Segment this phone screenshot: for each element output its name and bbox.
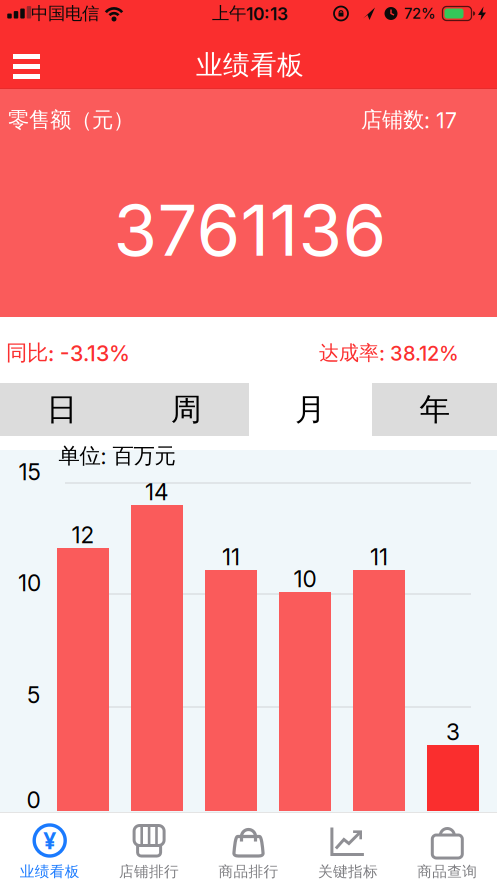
button[interactable]: 日	[0, 383, 124, 436]
staticText: 商品查询	[417, 862, 477, 880]
button[interactable]: ¥	[0, 812, 99, 882]
staticText: 12	[71, 521, 94, 549]
button[interactable]	[9, 50, 44, 83]
staticText: 零售额（元）	[8, 107, 134, 133]
staticText: 10	[293, 565, 316, 593]
staticText: 10	[18, 569, 41, 597]
staticText: 月	[295, 391, 326, 428]
staticText: 3	[446, 718, 460, 746]
staticText: 0	[26, 786, 40, 814]
staticText: 商品排行	[218, 862, 278, 880]
staticText: 年	[419, 391, 450, 428]
button[interactable]: 店铺排行	[100, 812, 199, 882]
staticText: 关键指标	[318, 862, 378, 880]
staticText: 店铺数: 17	[361, 107, 457, 133]
staticText: 店铺排行	[119, 862, 179, 880]
staticText: 同比: -3.13%	[6, 340, 130, 366]
staticText: 周	[171, 391, 202, 428]
staticText: 11	[370, 543, 388, 571]
button[interactable]: 商品查询	[398, 812, 497, 882]
button[interactable]: 月	[249, 383, 373, 436]
staticText: 业绩看板	[196, 49, 304, 81]
button[interactable]: 商品排行	[199, 812, 298, 882]
staticText: 业绩看板	[20, 862, 80, 880]
staticText: 上午10:13	[212, 3, 288, 24]
staticText: 日	[47, 391, 78, 428]
staticText: 14	[145, 478, 169, 506]
staticText: 72%	[404, 5, 436, 22]
staticText: 达成率: 38.12%	[319, 340, 459, 366]
button[interactable]: 关键指标	[298, 812, 397, 882]
staticText: 单位: 百万元	[58, 443, 175, 469]
staticText: 15	[18, 458, 40, 486]
staticText: 11	[222, 543, 240, 571]
button[interactable]: 年	[373, 383, 497, 436]
staticText: 5	[27, 681, 40, 709]
staticText: ¥	[43, 825, 56, 855]
button[interactable]: 周	[124, 383, 248, 436]
staticText: 中国电信	[31, 3, 99, 24]
staticText: 3761136	[113, 187, 386, 273]
